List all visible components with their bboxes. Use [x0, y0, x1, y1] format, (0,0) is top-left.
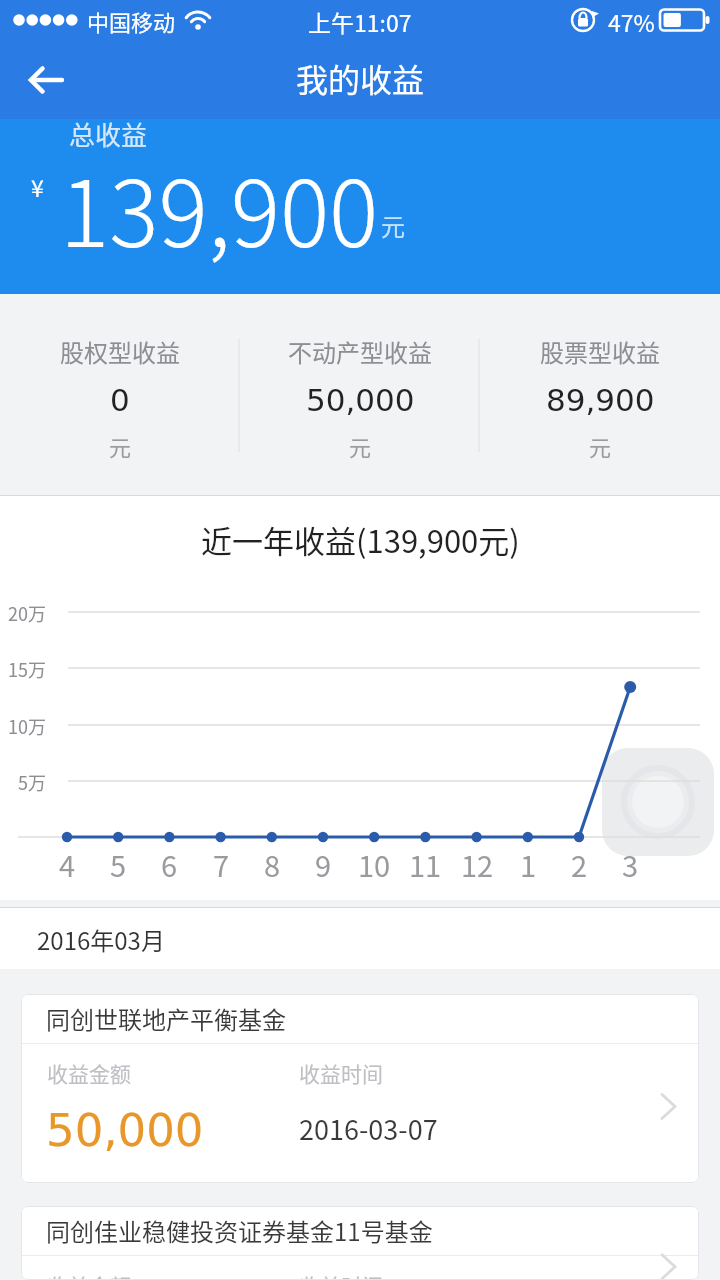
staticText: 3 — [606, 843, 654, 885]
staticText: 15万 — [0, 656, 46, 682]
staticText: 5 — [94, 843, 142, 885]
staticText: 5万 — [0, 769, 46, 795]
staticText: 8 — [248, 843, 296, 885]
staticText: 中国移动 — [87, 5, 176, 37]
staticText: 同创世联地产平衡基金 — [46, 1001, 286, 1036]
staticText: 4 — [43, 843, 91, 885]
button[interactable]: 不动产型收益 — [240, 294, 480, 495]
staticText: 12 — [453, 843, 501, 885]
staticText: 元 — [109, 430, 132, 462]
staticText: 20万 — [0, 600, 46, 626]
staticText: 收益时间 — [299, 1058, 383, 1088]
staticText: 不动产型收益 — [288, 334, 432, 369]
staticText: 近一年收益(139,900元) — [201, 517, 520, 562]
staticText: 我的收益 — [296, 55, 425, 101]
button[interactable]: 股权型收益 — [0, 294, 240, 495]
button[interactable]: 股票型收益 — [480, 294, 720, 495]
staticText: 元 — [381, 208, 405, 243]
staticText: 收益金额 — [47, 1270, 131, 1280]
staticText: 2016-03-07 — [299, 1109, 438, 1148]
staticText: 9 — [299, 843, 347, 885]
staticText: 89,900 — [546, 382, 655, 418]
staticText: 2 — [555, 843, 603, 885]
staticText: 139,900 — [60, 140, 379, 273]
staticText: 上午11:07 — [308, 5, 412, 38]
staticText: 总收益 — [69, 115, 148, 153]
staticText: 收益时间 — [299, 1270, 383, 1280]
staticText: 50,000 — [46, 1104, 204, 1156]
staticText: 同创佳业稳健投资证券基金11号基金 — [46, 1213, 433, 1248]
staticText: 50,000 — [306, 382, 415, 418]
staticText: 10 — [350, 843, 398, 885]
staticText: 11 — [401, 843, 449, 885]
staticText: 股票型收益 — [540, 334, 660, 369]
staticText: 6 — [145, 843, 193, 885]
staticText: 股权型收益 — [60, 334, 180, 369]
staticText: 元 — [589, 430, 612, 462]
staticText: 1 — [504, 843, 552, 885]
button[interactable]: Back — [15, 49, 77, 111]
button[interactable]: 同创世联地产平衡基金 — [21, 994, 699, 1183]
staticText: 47% — [608, 5, 655, 38]
staticText: 10万 — [0, 713, 46, 739]
staticText: 收益金额 — [47, 1058, 131, 1088]
staticText: ¥ — [31, 170, 44, 203]
staticText: 元 — [349, 430, 372, 462]
staticText: 7 — [197, 843, 245, 885]
staticText: 2016年03月 — [37, 922, 165, 957]
button[interactable]: 同创佳业稳健投资证券基金11号基金 — [21, 1206, 699, 1280]
staticText: 0 — [110, 382, 130, 418]
